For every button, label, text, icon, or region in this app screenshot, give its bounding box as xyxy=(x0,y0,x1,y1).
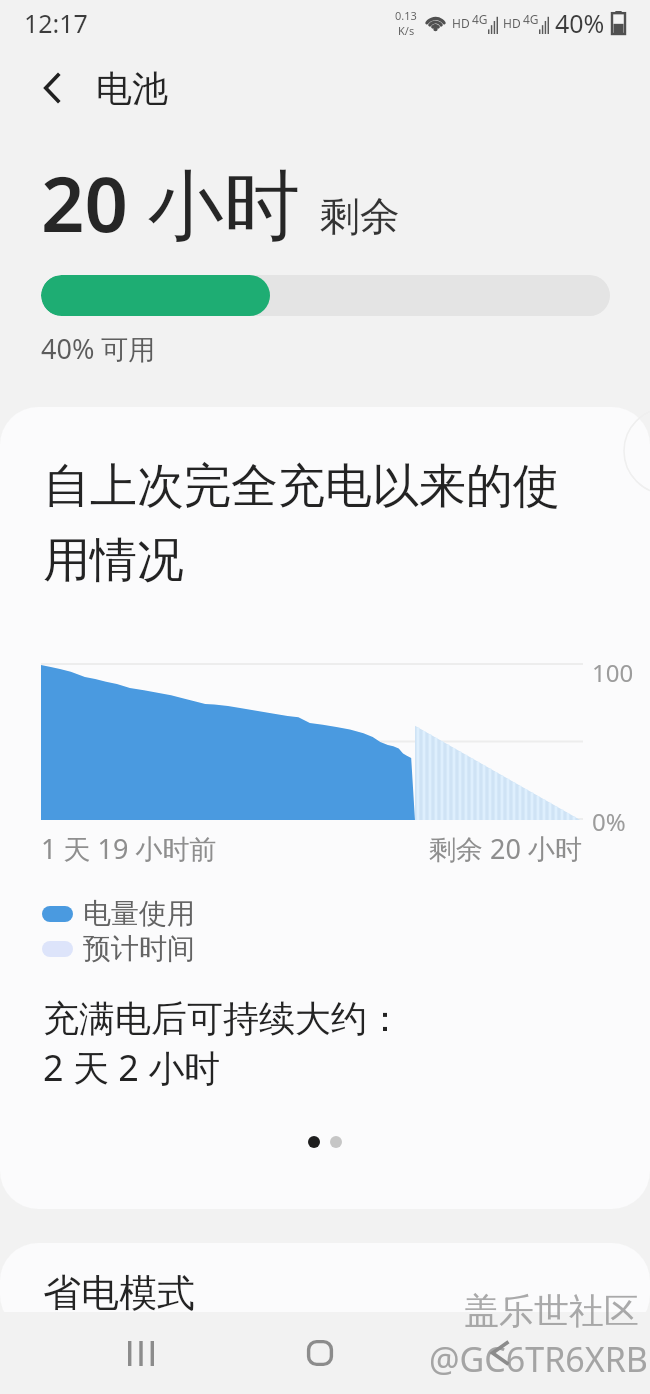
staticText: 剩余 20 小时 xyxy=(429,830,582,867)
button[interactable]: Back xyxy=(0,52,96,130)
staticText: HD xyxy=(503,15,521,31)
staticText: 充满电后可持续大约： 2 天 2 小时 xyxy=(43,996,403,1092)
staticText: 20 小时 xyxy=(41,151,300,255)
staticText: 剩余 xyxy=(320,191,400,241)
staticText: @GC6TR6XRB xyxy=(429,1336,648,1382)
button[interactable]: Back xyxy=(455,1321,545,1385)
staticText: 0% xyxy=(592,805,626,838)
staticText: 省电模式 xyxy=(43,1269,195,1317)
staticText: 40% xyxy=(555,6,605,40)
button[interactable]: Home xyxy=(275,1321,365,1385)
staticText: 40% 可用 xyxy=(41,330,156,367)
staticText: HD xyxy=(452,15,470,31)
staticText: 4G xyxy=(523,11,539,27)
staticText: 预计时间 xyxy=(83,931,195,966)
staticText: 盖乐世社区 xyxy=(464,1289,639,1333)
staticText: 电池 xyxy=(96,66,168,111)
staticText: 电量使用 xyxy=(83,896,195,931)
staticText: 4G xyxy=(472,11,488,27)
staticText: 12:17 xyxy=(24,6,88,40)
staticText: 自上次完全充电以来的使 用情况 xyxy=(43,457,560,590)
button[interactable]: Recent apps xyxy=(96,1321,186,1385)
staticText: 0.13 xyxy=(395,8,417,23)
staticText: K/s xyxy=(398,23,415,38)
staticText: 100 xyxy=(592,656,634,689)
staticText: 1 天 19 小时前 xyxy=(41,830,217,867)
